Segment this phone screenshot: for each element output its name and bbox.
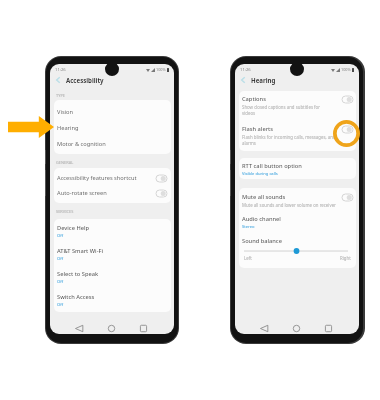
button[interactable]: Navigate up [52,72,65,88]
staticText: Switch Access [57,293,95,301]
staticText: Flash alerts [242,125,274,133]
button[interactable]: AT&T Smart Wi-Fi [54,245,171,268]
staticText: 11:26 [55,67,66,73]
staticText: Off [57,279,64,285]
staticText: Auto-rotate screen [57,189,107,197]
staticText: 100% [156,67,166,72]
button[interactable]: Back [248,321,280,334]
staticText: Mute all sounds [242,193,286,201]
staticText: Visible during calls [242,171,278,177]
staticText: Hearing [57,124,79,132]
staticText: Off [57,256,64,262]
staticText: Stereo [242,224,255,230]
staticText: Off [57,302,64,308]
staticText: Left [244,255,252,261]
staticText: Sound balance [242,237,282,245]
staticText: SERVICES [56,209,74,214]
button[interactable]: Captions [239,92,356,119]
staticText: GENERAL [56,160,74,165]
button[interactable]: RTT call button option [239,158,356,179]
staticText: Mute all sounds and lower volume on rece… [242,202,336,208]
staticText: 11:26 [240,67,251,73]
staticText: Off [57,233,64,239]
staticText: Accessibility [66,76,104,84]
staticText: Motor & cognition [57,140,106,148]
button[interactable]: Accessibility features shortcut [54,170,171,186]
button[interactable]: Audio channel [239,215,356,231]
staticText: AT&T Smart Wi-Fi [57,247,104,255]
staticText: Flash blinks for incoming calls, message… [242,134,336,146]
staticText: TYPE [56,93,65,98]
button[interactable]: Navigate up [237,72,250,88]
button[interactable]: Recent apps [127,321,159,334]
button[interactable]: Flash alerts [239,122,356,149]
button[interactable]: Vision [54,103,171,120]
staticText: Vision [57,108,74,116]
button[interactable]: Recent apps [312,321,344,334]
staticText: Right [340,255,351,261]
staticText: Select to Speak [57,270,99,278]
button[interactable]: Switch Access [54,291,171,312]
staticText: Captions [242,95,266,103]
staticText: Device Help [57,224,89,232]
button[interactable]: Select to Speak [54,268,171,291]
button[interactable]: Auto-rotate screen [54,185,171,201]
staticText: Show closed captions and subtitles for v… [242,104,321,116]
staticText: Accessibility features shortcut [57,174,137,182]
staticText: RTT call button option [242,162,302,170]
button[interactable]: Home [95,321,127,334]
button[interactable]: Back [63,321,95,334]
staticText: Audio channel [242,215,281,223]
button[interactable]: Device Help [54,222,171,245]
staticText: Hearing [251,76,276,84]
button[interactable]: Mute all sounds [239,190,356,210]
button[interactable]: Motor & cognition [54,135,171,152]
button[interactable]: Hearing [54,119,171,136]
button[interactable]: Home [280,321,312,334]
staticText: 100% [341,67,351,72]
